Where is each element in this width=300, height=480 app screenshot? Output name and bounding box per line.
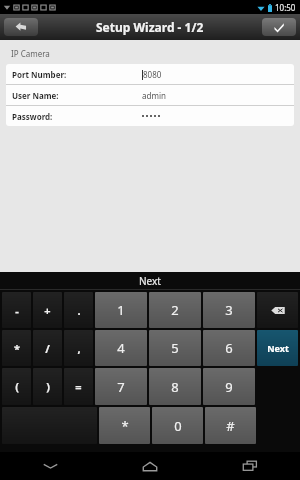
button[interactable]: Back [4,18,38,36]
button[interactable]: Next [121,272,179,289]
staticText: 7 [117,378,125,396]
staticText: Setup Wizard - 1/2 [96,19,204,35]
button[interactable]: ) [33,368,62,405]
staticText: 8 [171,378,179,396]
button[interactable]: . [64,292,93,328]
staticText: + [44,303,51,318]
button[interactable]: * [99,407,150,444]
button[interactable]: ( [2,368,31,405]
button[interactable]: Backspace [257,292,298,328]
staticText: User Name: [12,90,142,101]
staticText: ) [46,379,50,394]
button[interactable]: # [205,407,256,444]
staticText: 2 [171,301,179,319]
button[interactable]: * [2,330,31,366]
button[interactable]: Port Number: [6,64,294,84]
staticText: = [75,379,82,394]
button[interactable]: / [33,330,62,366]
button[interactable]: 6 [203,330,255,366]
button[interactable]: 3 [203,292,255,328]
staticText: Next [139,274,161,287]
staticText: Password: [12,111,142,122]
staticText: * [14,341,20,356]
staticText: 5 [171,339,179,357]
staticText: IP Camera [11,48,50,59]
staticText: / [45,341,50,356]
button[interactable]: 4 [95,330,147,366]
staticText: 4 [117,339,125,357]
button[interactable]: Confirm [262,18,296,36]
button[interactable]: 7 [95,368,147,405]
button[interactable]: = [64,368,93,405]
staticText: . [77,303,81,318]
button[interactable]: 8 [149,368,201,405]
staticText: 3 [225,301,233,319]
button[interactable]: , [64,330,93,366]
staticText: - [15,303,19,318]
staticText: # [226,417,235,435]
staticText: admin [142,90,166,101]
button[interactable]: 2 [149,292,201,328]
staticText: 1 [117,301,125,319]
staticText: , [77,341,81,356]
staticText: 8080 [143,69,162,80]
button[interactable]: Hide keyboard [0,452,100,480]
button[interactable]: + [33,292,62,328]
staticText: 10:50 [275,2,296,13]
staticText: Next [267,342,289,354]
staticText: * [121,417,129,435]
button[interactable]: User Name: [6,85,294,105]
button[interactable]: - [2,292,31,328]
button[interactable]: Password: [6,106,294,126]
button[interactable] [2,407,97,444]
staticText: ( [15,379,19,394]
staticText: 0 [174,417,182,435]
button[interactable]: 5 [149,330,201,366]
button[interactable]: 9 [203,368,255,405]
button[interactable]: Home [100,452,200,480]
staticText: 9 [225,378,233,396]
button[interactable]: Next [257,330,298,366]
button[interactable]: Recent apps [200,452,300,480]
button[interactable]: 1 [95,292,147,328]
staticText: Port Number: [12,69,142,80]
button[interactable]: 0 [152,407,203,444]
staticText: 6 [225,339,233,357]
